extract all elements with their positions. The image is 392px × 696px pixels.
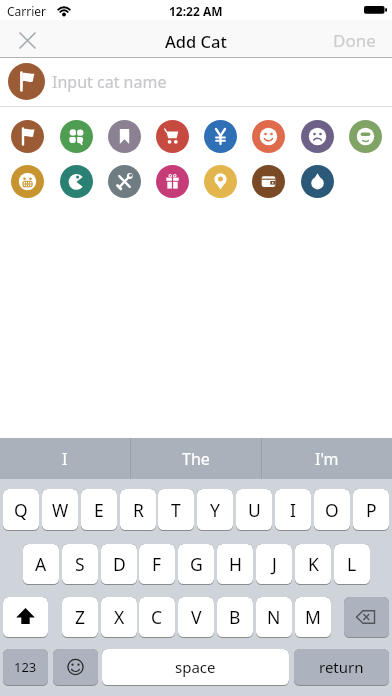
staticText: W xyxy=(52,498,69,522)
button[interactable]: K xyxy=(295,544,331,585)
button[interactable]: V xyxy=(178,597,214,638)
staticText: U xyxy=(248,498,261,522)
button[interactable] xyxy=(108,120,141,153)
button[interactable]: U xyxy=(236,489,272,531)
staticText: Add Cat xyxy=(165,30,227,52)
button[interactable] xyxy=(11,165,44,198)
button[interactable] xyxy=(252,165,285,198)
staticText: V xyxy=(191,605,202,629)
button[interactable]: F xyxy=(139,544,175,585)
button[interactable]: A xyxy=(23,544,59,585)
button[interactable]: E xyxy=(81,489,117,531)
button[interactable] xyxy=(3,597,48,638)
staticText: I'm xyxy=(315,448,339,470)
button[interactable]: Z xyxy=(62,597,98,638)
staticText: I xyxy=(62,448,68,470)
button[interactable]: space xyxy=(102,649,289,686)
button[interactable]: B xyxy=(217,597,253,638)
staticText: P xyxy=(366,498,377,522)
staticText: K xyxy=(308,552,319,576)
button[interactable]: Y xyxy=(197,489,233,531)
button[interactable]: I xyxy=(0,438,130,479)
staticText: B xyxy=(229,605,241,629)
staticText: Y xyxy=(210,498,220,522)
button[interactable]: X xyxy=(101,597,137,638)
staticText: Input cat name xyxy=(52,71,167,93)
staticText: N xyxy=(267,605,281,629)
button[interactable] xyxy=(349,120,382,153)
button[interactable]: W xyxy=(42,489,78,531)
staticText: 12:22 AM xyxy=(169,3,223,19)
button[interactable] xyxy=(204,165,237,198)
button[interactable] xyxy=(11,120,44,153)
staticText: A xyxy=(35,552,47,576)
staticText: Q xyxy=(14,498,28,522)
staticText: O xyxy=(325,498,339,522)
staticText: space xyxy=(175,657,216,677)
staticText: R xyxy=(133,498,144,522)
button[interactable] xyxy=(344,597,389,638)
button[interactable]: L xyxy=(334,544,370,585)
button[interactable]: J xyxy=(256,544,292,585)
button[interactable] xyxy=(0,58,392,106)
button[interactable] xyxy=(10,24,46,57)
staticText: G xyxy=(190,552,203,576)
staticText: S xyxy=(75,552,85,576)
staticText: The xyxy=(182,448,210,470)
button[interactable] xyxy=(156,120,189,153)
staticText: E xyxy=(94,498,104,522)
button[interactable]: S xyxy=(62,544,98,585)
button[interactable] xyxy=(301,120,334,153)
staticText: L xyxy=(347,552,357,576)
button[interactable] xyxy=(53,649,98,686)
staticText: T xyxy=(171,498,181,522)
staticText: I xyxy=(290,498,296,522)
button[interactable]: P xyxy=(353,489,389,531)
button[interactable]: M xyxy=(295,597,331,638)
button[interactable] xyxy=(60,120,93,153)
staticText: F xyxy=(152,552,162,576)
button[interactable]: D xyxy=(101,544,137,585)
button[interactable] xyxy=(156,165,189,198)
staticText: H xyxy=(229,552,242,576)
button[interactable]: I'm xyxy=(262,438,392,479)
button[interactable]: T xyxy=(158,489,194,531)
button[interactable] xyxy=(252,120,285,153)
button[interactable]: H xyxy=(217,544,253,585)
button[interactable]: Done xyxy=(300,24,376,57)
button[interactable]: The xyxy=(131,438,261,479)
staticText: X xyxy=(114,605,125,629)
button[interactable]: I xyxy=(275,489,311,531)
staticText: 123 xyxy=(14,658,37,676)
staticText: Z xyxy=(75,605,86,629)
staticText: M xyxy=(305,605,321,629)
button[interactable] xyxy=(301,165,334,198)
staticText: C xyxy=(151,605,163,629)
button[interactable]: R xyxy=(120,489,156,531)
button[interactable]: Q xyxy=(3,489,39,531)
button[interactable]: O xyxy=(314,489,350,531)
button[interactable] xyxy=(204,120,237,153)
button[interactable]: G xyxy=(178,544,214,585)
button[interactable] xyxy=(60,165,93,198)
staticText: Done xyxy=(333,29,376,52)
button[interactable]: return xyxy=(294,649,389,686)
staticText: J xyxy=(272,552,277,576)
button[interactable]: C xyxy=(139,597,175,638)
staticText: Carrier xyxy=(7,3,47,19)
button[interactable]: 123 xyxy=(3,649,48,686)
staticText: D xyxy=(113,552,126,576)
button[interactable] xyxy=(108,165,141,198)
staticText: return xyxy=(319,657,364,677)
button[interactable]: N xyxy=(256,597,292,638)
